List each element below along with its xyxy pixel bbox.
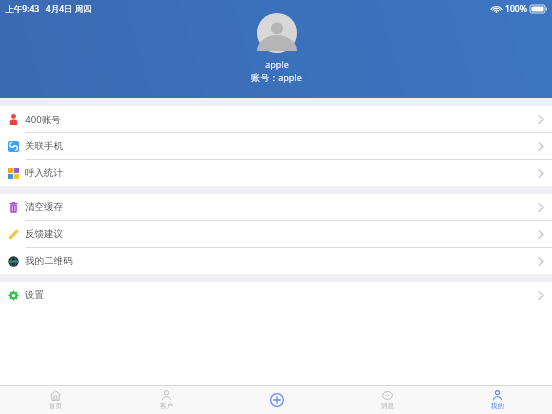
- button[interactable]: 400账号: [0, 106, 552, 132]
- button[interactable]: 关联手机: [0, 133, 552, 159]
- staticText: 上午9:43 4月4日 周四: [5, 3, 92, 15]
- staticText: 呼入统计: [25, 167, 63, 179]
- button[interactable]: 新建: [222, 386, 332, 414]
- button[interactable]: 清空缓存: [0, 194, 552, 220]
- staticText: 账号：apple: [251, 71, 302, 83]
- staticText: 关联手机: [25, 140, 63, 152]
- button[interactable]: 客户: [111, 386, 222, 414]
- button[interactable]: 首页: [0, 386, 111, 414]
- staticText: 设置: [25, 289, 44, 301]
- button[interactable]: 我的二维码: [0, 248, 552, 274]
- staticText: 清空缓存: [25, 201, 63, 213]
- staticText: 反馈建议: [25, 228, 63, 240]
- button[interactable]: 我的: [442, 386, 552, 414]
- button[interactable]: 反馈建议: [0, 221, 552, 247]
- button[interactable]: 呼入统计: [0, 160, 552, 186]
- staticText: 100%: [505, 3, 527, 15]
- button[interactable]: 消息: [332, 386, 442, 414]
- staticText: 我的: [491, 402, 504, 410]
- staticText: 首页: [49, 402, 62, 410]
- staticText: 客户: [160, 402, 173, 410]
- staticText: 400账号: [25, 113, 61, 126]
- staticText: apple: [265, 58, 289, 70]
- staticText: 我的二维码: [25, 255, 73, 267]
- staticText: 消息: [381, 402, 394, 410]
- button[interactable]: 设置: [0, 282, 552, 308]
